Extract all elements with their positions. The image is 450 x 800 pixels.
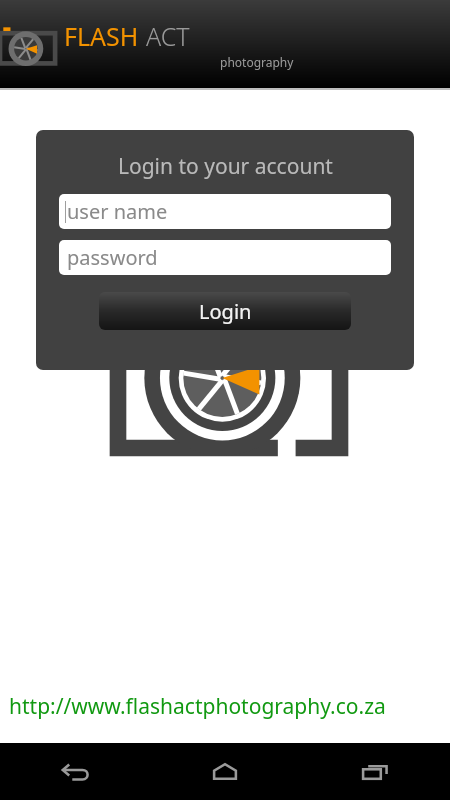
staticText: FLASH <box>64 19 139 53</box>
staticText: Login <box>199 298 252 325</box>
staticText: photography <box>220 54 294 70</box>
button[interactable]: http://www.flashactphotography.co.za <box>9 692 386 721</box>
staticText: http://www.flashactphotography.co.za <box>9 692 386 721</box>
button[interactable]: Login <box>99 292 351 330</box>
staticText: password <box>67 244 158 271</box>
button[interactable]: Home <box>150 743 300 800</box>
button[interactable]: password <box>59 240 391 275</box>
button[interactable]: user name <box>59 194 391 229</box>
button[interactable]: Recent apps <box>300 743 450 800</box>
staticText: Login to your account <box>118 152 333 181</box>
staticText: user name <box>67 198 168 225</box>
button[interactable]: Back <box>0 743 150 800</box>
staticText: ACT <box>146 19 190 53</box>
